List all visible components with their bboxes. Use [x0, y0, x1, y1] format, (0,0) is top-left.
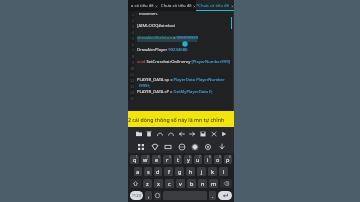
button[interactable]: l: [219, 167, 228, 176]
staticText: t: [177, 156, 179, 163]
button[interactable]: Card: [163, 142, 172, 151]
staticText: PLAYER_DATA cP = GetMyPlayerData ();: [137, 89, 213, 95]
staticText: 3: [158, 155, 160, 159]
button[interactable]: Chưa có tiêu đề: [160, 0, 196, 11]
button[interactable]: Emoji: [154, 191, 161, 200]
button[interactable]: v: [176, 179, 185, 188]
button[interactable]: a: [134, 167, 142, 176]
button[interactable]: .: [209, 191, 216, 200]
button[interactable]: z: [143, 179, 152, 188]
staticText: 3: [132, 24, 135, 29]
staticText: 4: [169, 155, 171, 159]
button[interactable]: s: [144, 167, 152, 176]
button[interactable]: j: [197, 167, 206, 176]
staticText: y: [187, 156, 190, 163]
button[interactable]: Save: [198, 129, 207, 138]
staticText: n: [201, 180, 205, 187]
staticText: a có tiêu đề: [131, 3, 154, 9]
button[interactable]: Grid: [136, 142, 145, 151]
staticText: r: [166, 156, 169, 163]
staticText: 13: [130, 84, 135, 89]
button[interactable]: n: [198, 179, 207, 188]
button[interactable]: Settings: [190, 142, 199, 151]
staticText: ,: [148, 192, 150, 199]
button[interactable]: Undo: [155, 129, 164, 138]
button[interactable]: Close: [209, 129, 218, 138]
button[interactable]: Open folder: [134, 129, 143, 138]
button[interactable]: Shield: [150, 142, 159, 151]
button[interactable]: Delete: [144, 129, 153, 138]
button[interactable]: Shift: [130, 179, 141, 188]
staticText: 8: [209, 155, 211, 159]
button[interactable]: ?123: [130, 191, 143, 200]
staticText: *Chưa có tiêu đề: [196, 3, 230, 9]
staticText: 6: [189, 155, 191, 159]
button[interactable]: h: [186, 167, 195, 176]
staticText: h: [189, 168, 193, 175]
staticText: k: [211, 168, 214, 175]
button[interactable]: Globe: [177, 142, 186, 151]
staticText: q: [133, 156, 137, 163]
button[interactable]: m: [209, 179, 218, 188]
staticText: v: [179, 180, 182, 187]
button[interactable]: b: [187, 179, 196, 188]
button[interactable]: p: [224, 155, 232, 164]
button[interactable]: *Chưa có tiêu đề: [196, 0, 234, 11]
staticText: 9: [132, 60, 135, 65]
staticText: 2 cái dòng thông số này là mn tự chỉnh n…: [128, 116, 234, 123]
staticText: f: [168, 168, 170, 175]
button[interactable]: q: [130, 155, 139, 164]
staticText: 15: [130, 96, 135, 101]
staticText: j: [201, 168, 203, 175]
staticText: moomen.: [139, 11, 158, 17]
button[interactable]: a có tiêu đề: [128, 0, 160, 11]
button[interactable]: Download: [217, 142, 226, 151]
button[interactable]: Enter: [218, 191, 232, 200]
staticText: i: [207, 156, 209, 163]
staticText: b: [190, 180, 194, 187]
button[interactable]: d: [154, 167, 162, 176]
button[interactable]: 2 cái dòng thông số này là mn tự chỉnh n…: [128, 111, 234, 127]
button[interactable]: Target: [203, 142, 212, 151]
button[interactable]: g: [175, 167, 184, 176]
button[interactable]: Run: [219, 129, 228, 138]
button[interactable]: y: [184, 155, 192, 164]
staticText: z: [146, 180, 149, 187]
button[interactable]: Back: [177, 129, 186, 138]
staticText: 5: [179, 155, 181, 159]
staticText: 1: [132, 12, 135, 17]
staticText: o: [216, 156, 220, 163]
staticText: 4: [132, 30, 135, 35]
button[interactable]: i: [204, 155, 212, 164]
staticText: void SetCrosshairOnEnemy [PlayerNumber99…: [137, 59, 230, 65]
staticText: 8: [132, 54, 135, 59]
staticText: d: [156, 168, 160, 175]
button[interactable]: o: [214, 155, 222, 164]
staticText: 7: [132, 48, 135, 53]
button[interactable]: t: [174, 155, 182, 164]
button[interactable]: Backspace: [220, 179, 232, 188]
button[interactable]: w: [141, 155, 150, 164]
button[interactable]: Redo: [166, 129, 175, 138]
staticText: showAimSkeleton = 999999999: [137, 35, 199, 41]
button[interactable]: Forward: [187, 129, 196, 138]
button[interactable]: k: [208, 167, 217, 176]
staticText: 1: [136, 155, 138, 159]
button[interactable]: u: [194, 155, 202, 164]
staticText: x: [157, 180, 160, 187]
staticText: p: [226, 156, 230, 163]
staticText: (999);: [139, 83, 150, 89]
button[interactable]: e: [152, 155, 161, 164]
staticText: ?123: [132, 193, 142, 199]
staticText: w: [143, 156, 148, 163]
staticText: s: [147, 168, 150, 175]
staticText: 9: [219, 155, 221, 159]
button[interactable]: f: [164, 167, 173, 176]
staticText: Chưa có tiêu đề: [161, 3, 192, 9]
button[interactable]: c: [165, 179, 174, 188]
staticText: g: [178, 168, 182, 175]
button[interactable]: ,: [145, 191, 152, 200]
button[interactable]: r: [163, 155, 172, 164]
button[interactable]: x: [154, 179, 163, 188]
